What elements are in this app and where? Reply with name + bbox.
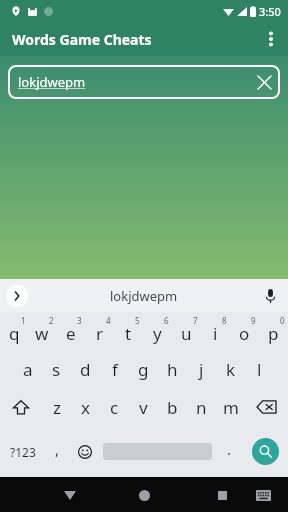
staticText: 6 — [164, 315, 169, 326]
button[interactable]: g — [129, 350, 158, 388]
button[interactable]: p — [259, 312, 288, 350]
staticText: a — [23, 358, 33, 381]
button[interactable]: y — [143, 312, 172, 350]
staticText: f — [112, 358, 118, 381]
staticText: 8 — [222, 315, 227, 326]
staticText: x — [81, 396, 90, 419]
staticText: z — [53, 396, 61, 419]
staticText: r — [96, 322, 104, 345]
staticText: . — [227, 439, 232, 459]
staticText: 0 — [280, 315, 285, 326]
button[interactable]: a — [13, 350, 42, 388]
button[interactable]: , — [45, 426, 70, 477]
staticText: 9 — [251, 315, 256, 326]
staticText: t — [125, 322, 132, 345]
staticText: w — [35, 322, 49, 345]
button[interactable]: Expand suggestions — [6, 285, 28, 307]
staticText: 4 — [106, 315, 111, 326]
button[interactable]: s — [42, 350, 71, 388]
staticText: e — [66, 322, 76, 345]
button[interactable]: k — [216, 350, 245, 388]
button[interactable]: Home — [129, 480, 159, 510]
button[interactable]: i — [201, 312, 230, 350]
staticText: 5 — [135, 315, 140, 326]
staticText: m — [223, 396, 239, 419]
button[interactable]: Back — [55, 480, 85, 510]
button[interactable]: l — [245, 350, 274, 388]
staticText: l — [257, 358, 262, 381]
button[interactable]: o — [230, 312, 259, 350]
button[interactable]: Switch keyboard — [250, 482, 276, 508]
button[interactable]: q — [0, 312, 28, 350]
button[interactable]: ?123 — [0, 426, 45, 477]
button[interactable]: c — [100, 388, 129, 426]
staticText: g — [138, 358, 149, 381]
staticText: u — [181, 322, 192, 345]
staticText: d — [80, 358, 91, 381]
staticText: v — [139, 396, 148, 419]
button[interactable]: w — [28, 312, 56, 350]
button[interactable]: t — [114, 312, 143, 350]
button[interactable]: x — [71, 388, 100, 426]
button[interactable]: Backspace — [245, 388, 288, 426]
button[interactable]: m — [216, 388, 245, 426]
staticText: j — [199, 358, 204, 381]
staticText: p — [268, 322, 279, 345]
button[interactable]: j — [187, 350, 216, 388]
staticText: lokjdwepm — [18, 73, 248, 91]
staticText: i — [213, 322, 218, 345]
staticText: q — [9, 322, 20, 345]
staticText: lokjdwepm — [110, 287, 178, 305]
staticText: ?123 — [10, 444, 36, 460]
button[interactable]: More options — [254, 22, 288, 56]
button[interactable]: Recent apps — [207, 480, 237, 510]
staticText: k — [226, 358, 236, 381]
staticText: Words Game Cheats — [12, 30, 152, 49]
staticText: s — [52, 358, 61, 381]
staticText: 1 — [21, 315, 26, 326]
staticText: 3 — [77, 315, 82, 326]
button[interactable]: . — [216, 426, 242, 477]
button[interactable]: Space — [99, 426, 216, 477]
button[interactable]: Clear search — [248, 66, 280, 98]
button[interactable]: e — [56, 312, 85, 350]
staticText: , — [55, 439, 60, 459]
staticText: h — [167, 358, 178, 381]
button[interactable]: Voice input — [260, 286, 280, 306]
staticText: 7 — [193, 315, 198, 326]
button[interactable]: u — [172, 312, 201, 350]
button[interactable]: r — [85, 312, 114, 350]
staticText: o — [239, 322, 250, 345]
button[interactable]: Search — [242, 426, 288, 477]
staticText: n — [196, 396, 207, 419]
button[interactable]: lokjdwepm — [8, 65, 280, 99]
staticText: b — [167, 396, 178, 419]
button[interactable]: Shift — [0, 388, 42, 426]
button[interactable]: n — [187, 388, 216, 426]
button[interactable]: h — [158, 350, 187, 388]
button[interactable]: d — [71, 350, 100, 388]
staticText: y — [153, 322, 162, 345]
staticText: 2 — [49, 315, 54, 326]
staticText: 3:50 — [259, 4, 281, 19]
button[interactable]: z — [42, 388, 71, 426]
button[interactable]: v — [129, 388, 158, 426]
button[interactable]: b — [158, 388, 187, 426]
staticText: c — [110, 396, 119, 419]
button[interactable]: f — [100, 350, 129, 388]
button[interactable]: Emoji — [70, 426, 99, 477]
